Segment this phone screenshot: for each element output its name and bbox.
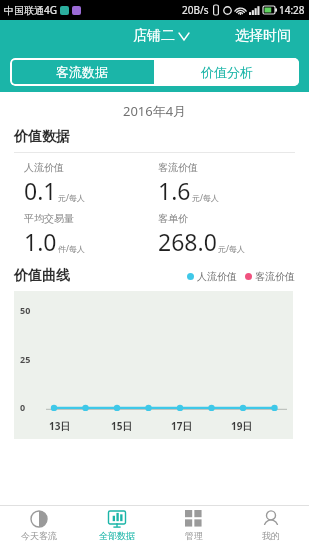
staticText: 2016年4月 xyxy=(123,102,187,120)
staticText: 平均交易量 xyxy=(24,212,74,225)
staticText: 价值曲线 xyxy=(14,267,70,285)
staticText: 元/每人 xyxy=(58,192,85,203)
staticText: 价值分析 xyxy=(201,64,253,80)
button[interactable]: 全部数据 xyxy=(78,506,155,550)
staticText: 1.0 xyxy=(24,226,57,257)
staticText: 268.0 xyxy=(158,226,217,257)
button[interactable]: 今天客流 xyxy=(0,506,78,550)
staticText: 1.6 xyxy=(158,175,191,206)
staticText: 人流价值 xyxy=(197,270,237,283)
button[interactable]: 管理 xyxy=(155,506,232,550)
staticText: 店铺二 xyxy=(133,27,175,45)
staticText: 50 xyxy=(20,304,31,316)
staticText: 17日 xyxy=(171,419,193,433)
staticText: 选择时间 xyxy=(235,27,291,45)
button[interactable]: 客流数据 xyxy=(10,58,154,86)
staticText: 件/每人 xyxy=(58,243,85,254)
button[interactable]: 价值分析 xyxy=(154,58,299,86)
staticText: 14:28 xyxy=(279,3,305,17)
staticText: 今天客流 xyxy=(21,530,57,541)
button[interactable]: 我的 xyxy=(232,506,309,550)
staticText: 管理 xyxy=(185,530,203,541)
staticText: 元/每人 xyxy=(192,192,219,203)
staticText: 15日 xyxy=(111,419,133,433)
staticText: 价值数据 xyxy=(14,128,70,146)
staticText: 中国联通4G xyxy=(4,3,57,17)
staticText: 人流价值 xyxy=(24,161,64,174)
staticText: 全部数据 xyxy=(99,530,135,541)
staticText: 客流价值 xyxy=(255,270,295,283)
staticText: 0.1 xyxy=(24,175,57,206)
staticText: 13日 xyxy=(49,419,71,433)
staticText: 19日 xyxy=(231,419,253,433)
staticText: 我的 xyxy=(262,530,280,541)
staticText: 20B/s xyxy=(182,3,209,17)
staticText: 元/每人 xyxy=(218,243,245,254)
staticText: 客流数据 xyxy=(56,64,108,80)
button[interactable]: 店铺二 xyxy=(127,23,195,49)
staticText: 客流价值 xyxy=(158,161,198,174)
staticText: 0 xyxy=(20,401,26,413)
button[interactable]: 选择时间 xyxy=(225,23,301,49)
staticText: 客单价 xyxy=(158,212,188,225)
staticText: 25 xyxy=(20,353,31,365)
